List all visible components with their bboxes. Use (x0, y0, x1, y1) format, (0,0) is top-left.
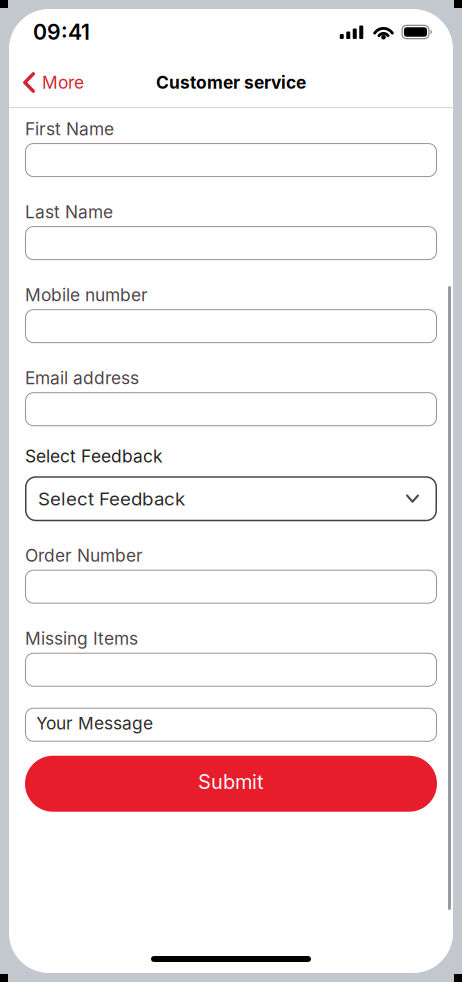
staticText: Mobile number (25, 285, 148, 305)
button[interactable]: Back to More (9, 72, 84, 93)
button[interactable]: Mobile number (25, 309, 437, 343)
button[interactable]: Select Feedback (25, 476, 437, 521)
staticText: Last Name (25, 202, 113, 222)
staticText: Customer service (156, 72, 306, 93)
staticText: Submit (198, 770, 264, 793)
staticText: Missing Items (25, 628, 138, 649)
staticText: Select Feedback (38, 488, 185, 510)
button[interactable]: Missing Items (25, 653, 437, 687)
staticText: Select Feedback (25, 446, 163, 466)
button[interactable]: Order Number (25, 570, 437, 604)
staticText: 09:41 (33, 19, 90, 45)
button[interactable]: Last Name (25, 226, 437, 260)
staticText: Your Message (36, 713, 153, 733)
button[interactable]: Submit (25, 756, 437, 812)
staticText: First Name (25, 119, 114, 139)
staticText: Email address (25, 368, 139, 388)
button[interactable]: Email address (25, 392, 437, 426)
staticText: Order Number (25, 545, 143, 566)
button[interactable]: First Name (25, 143, 437, 177)
staticText: More (42, 72, 84, 93)
button[interactable]: Your Message (25, 708, 437, 742)
